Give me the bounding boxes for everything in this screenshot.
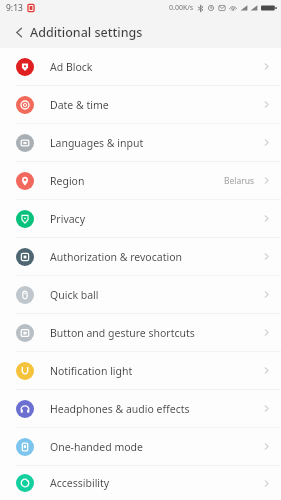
button[interactable]: Ad Block <box>0 48 281 85</box>
staticText: Date & time <box>50 98 109 112</box>
staticText: Accessibility <box>50 476 110 490</box>
button[interactable]: Back <box>6 19 32 45</box>
staticText: 0.00K/s <box>169 3 194 13</box>
button[interactable]: Button and gesture shortcuts <box>0 314 281 351</box>
staticText: Languages & input <box>50 136 144 150</box>
staticText: 9:13 <box>6 2 23 14</box>
button[interactable]: Region <box>0 162 281 199</box>
staticText: Additional settings <box>30 24 143 41</box>
button[interactable]: Accessibility <box>0 466 281 500</box>
button[interactable]: Headphones & audio effects <box>0 390 281 427</box>
staticText: Belarus <box>224 175 255 187</box>
staticText: Quick ball <box>50 288 99 302</box>
button[interactable]: Date & time <box>0 86 281 123</box>
button[interactable]: Languages & input <box>0 124 281 161</box>
staticText: Headphones & audio effects <box>50 402 190 416</box>
staticText: Notification light <box>50 364 133 378</box>
staticText: Button and gesture shortcuts <box>50 326 195 340</box>
button[interactable]: Authorization & revocation <box>0 238 281 275</box>
button[interactable]: Privacy <box>0 200 281 237</box>
staticText: Authorization & revocation <box>50 250 182 264</box>
staticText: Ad Block <box>50 60 93 74</box>
button[interactable]: Notification light <box>0 352 281 389</box>
button[interactable]: Quick ball <box>0 276 281 313</box>
staticText: Region <box>50 174 85 188</box>
button[interactable]: One-handed mode <box>0 428 281 465</box>
staticText: Privacy <box>50 212 86 226</box>
staticText: One-handed mode <box>50 440 143 454</box>
